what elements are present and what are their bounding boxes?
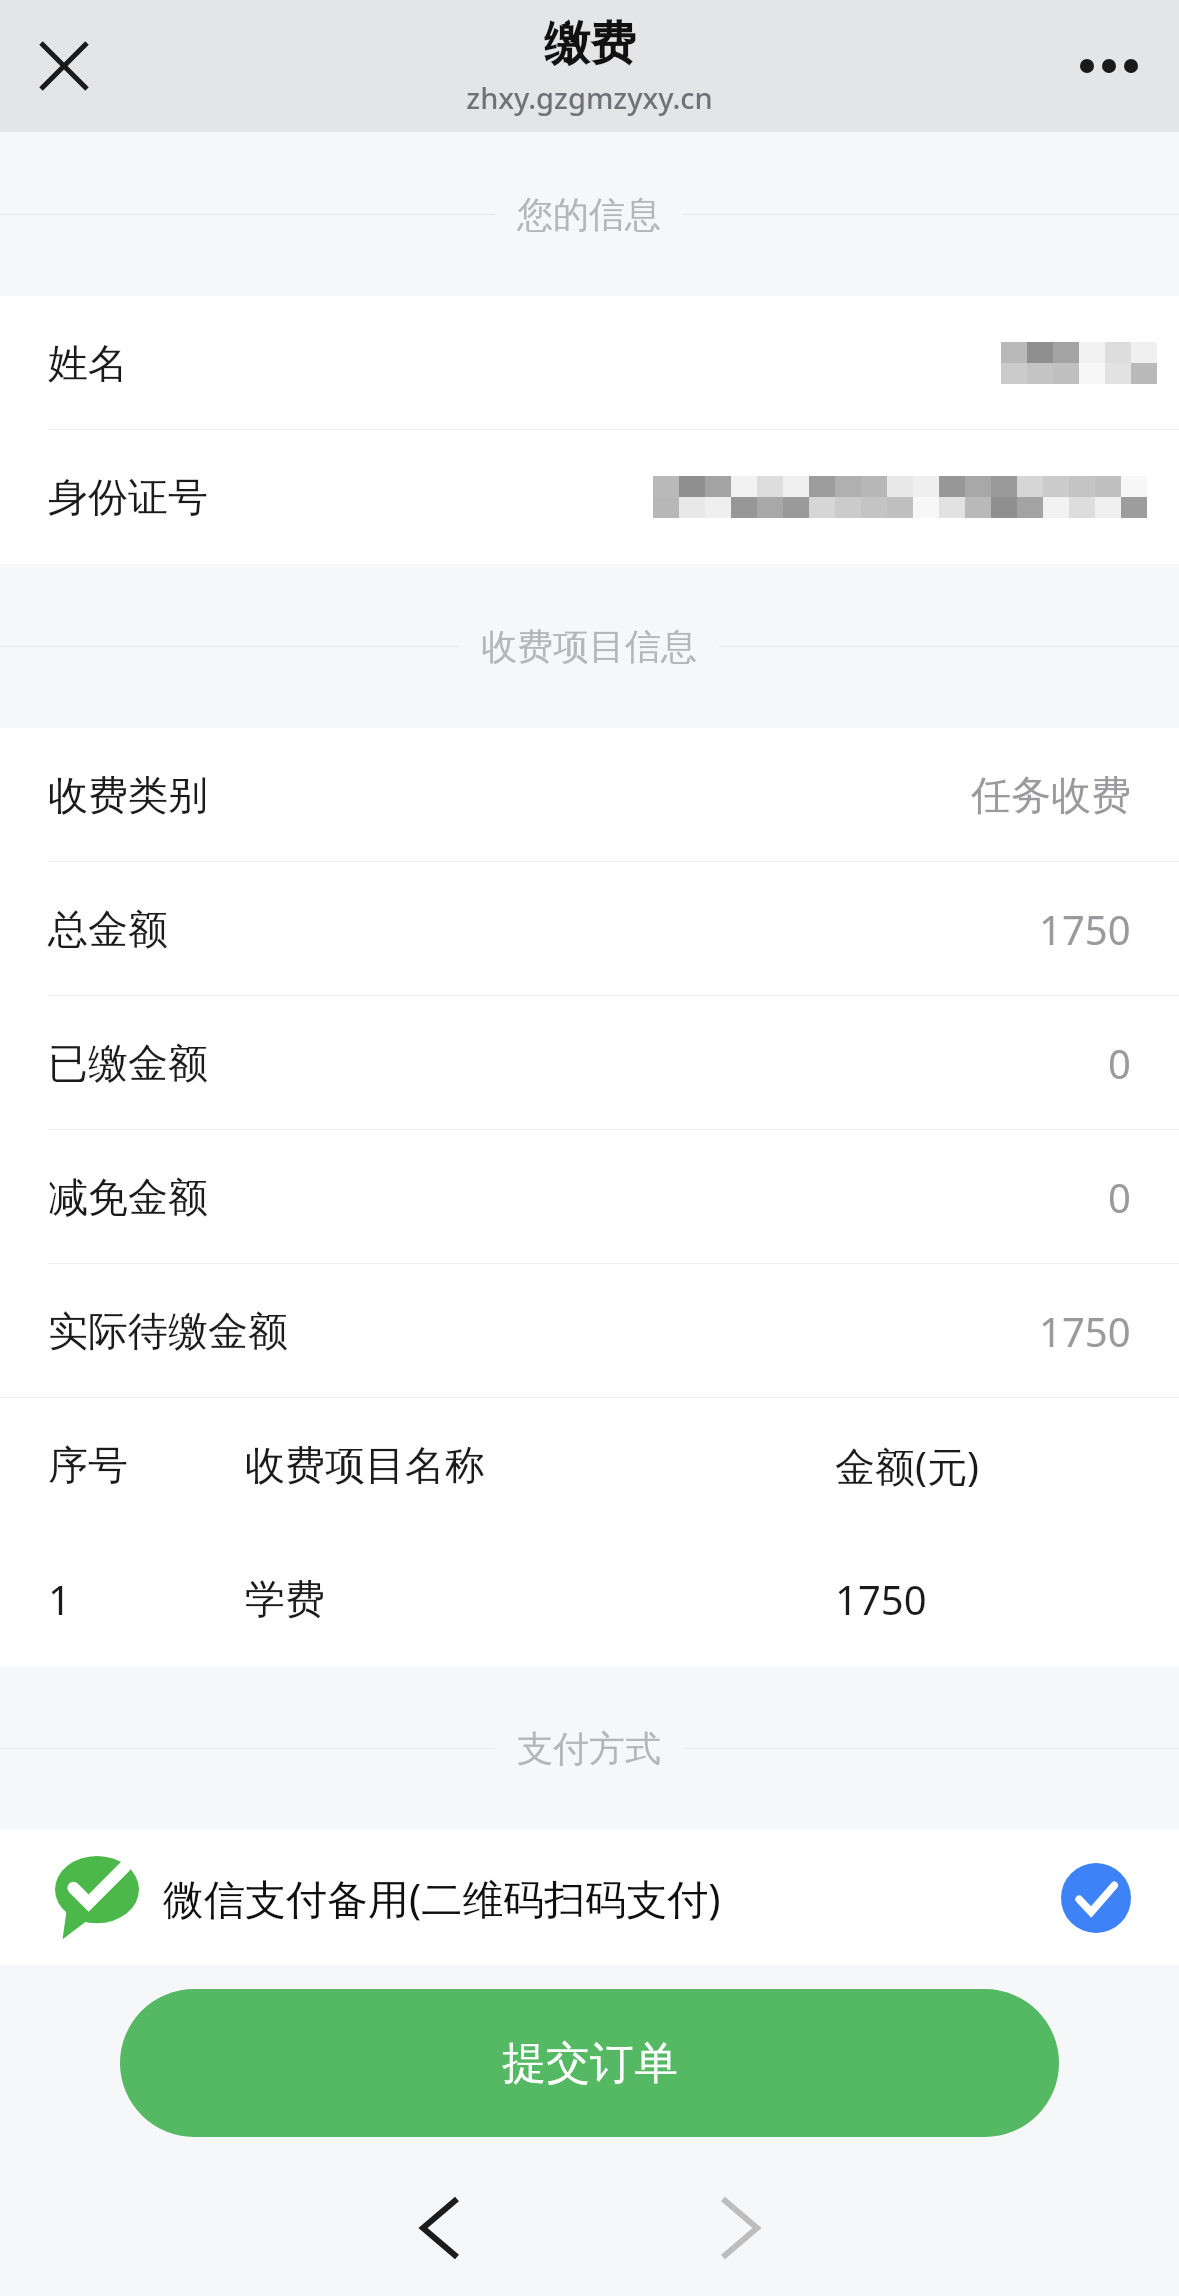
staticText: 任务收费	[971, 770, 1131, 820]
staticText: 金额(元)	[835, 1438, 979, 1493]
staticText: 微信支付备用(二维码扫码支付)	[163, 1870, 721, 1926]
button[interactable]: 微信支付备用(二维码扫码支付)	[0, 1830, 1179, 1965]
button[interactable]: 姓名	[0, 296, 1179, 430]
button[interactable]: Back	[380, 2168, 500, 2288]
staticText: 减免金额	[48, 1172, 208, 1222]
staticText: 提交订单	[502, 2036, 678, 2091]
staticText: 1750	[835, 1572, 927, 1626]
staticText: 0	[1108, 1170, 1131, 1224]
staticText: 收费类别	[48, 770, 208, 820]
button[interactable]: 实际待缴金额	[0, 1264, 1179, 1398]
staticText: 姓名	[48, 338, 128, 388]
staticText: 身份证号	[48, 472, 208, 522]
button[interactable]: 总金额	[0, 862, 1179, 996]
button[interactable]: 收费类别	[0, 728, 1179, 862]
staticText: 学费	[245, 1574, 835, 1624]
staticText: 1	[48, 1572, 245, 1626]
button[interactable]: 身份证号	[0, 430, 1179, 564]
staticText: 收费项目名称	[245, 1440, 835, 1490]
staticText: 收费项目信息	[481, 624, 697, 669]
staticText: 实际待缴金额	[48, 1306, 288, 1356]
staticText: 序号	[48, 1440, 245, 1490]
staticText: zhxy.gzgmzyxy.cn	[466, 78, 713, 117]
button[interactable]: More options	[1065, 22, 1153, 110]
staticText: 支付方式	[517, 1726, 661, 1771]
staticText: 0	[1108, 1036, 1131, 1090]
button[interactable]: Close	[20, 22, 108, 110]
staticText: 您的信息	[517, 192, 661, 237]
button[interactable]: Forward	[680, 2168, 800, 2288]
button[interactable]: 提交订单	[120, 1989, 1059, 2137]
staticText: 1750	[1039, 902, 1131, 956]
button[interactable]: 减免金额	[0, 1130, 1179, 1264]
staticText: 已缴金额	[48, 1038, 208, 1088]
staticText: 总金额	[48, 904, 168, 954]
staticText: 缴费	[544, 15, 636, 73]
button[interactable]: 已缴金额	[0, 996, 1179, 1130]
staticText: 1750	[1039, 1304, 1131, 1358]
